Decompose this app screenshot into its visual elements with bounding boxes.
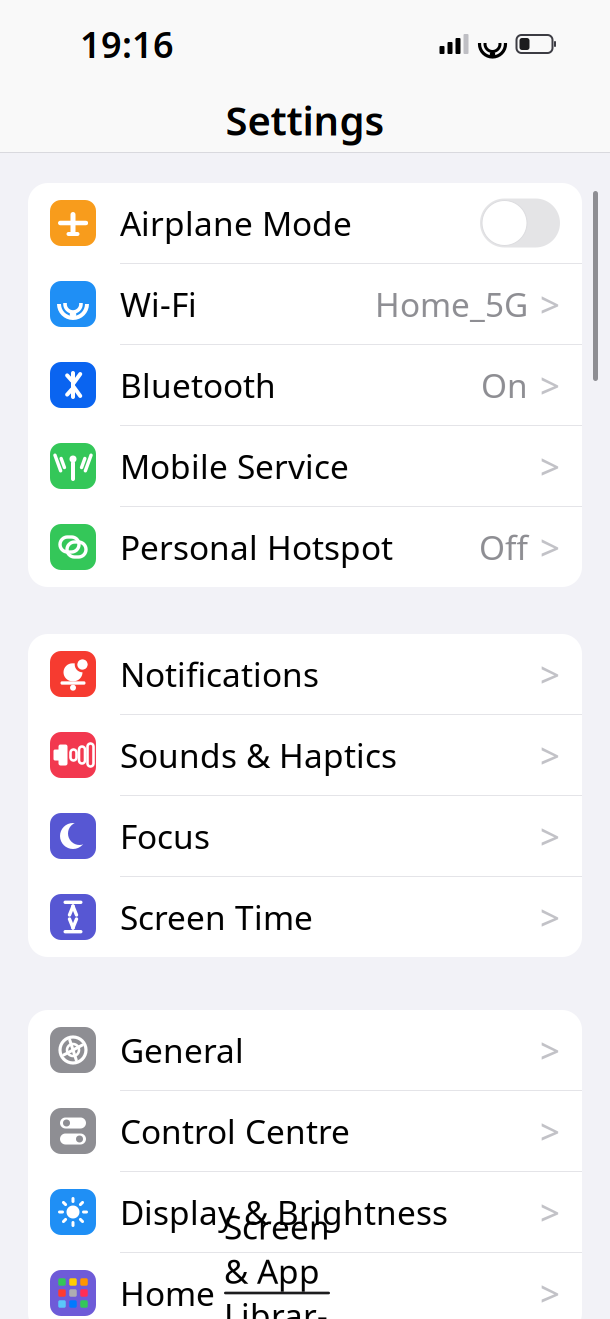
staticText: > <box>540 732 560 778</box>
staticText: > <box>540 894 560 940</box>
button[interactable]: Screen Time <box>28 877 582 957</box>
staticText: > <box>540 281 560 327</box>
staticText: Screen Time <box>120 895 313 939</box>
staticText: > <box>540 1027 560 1073</box>
button[interactable]: Focus <box>28 796 582 877</box>
staticText: Home <box>120 1271 224 1315</box>
staticText: > <box>540 813 560 859</box>
button[interactable]: Display & Brightness <box>28 1172 582 1253</box>
staticText: Control Centre <box>120 1109 350 1153</box>
staticText: > <box>540 651 560 697</box>
staticText: > <box>540 1108 560 1154</box>
button[interactable]: Notifications <box>28 634 582 715</box>
button[interactable]: Mobile Service <box>28 426 582 507</box>
staticText: On <box>481 363 528 407</box>
staticText: Sounds & Haptics <box>120 733 397 777</box>
staticText: Home_5G <box>375 282 528 326</box>
staticText: Wi-Fi <box>120 282 197 326</box>
button[interactable]: Airplane Mode <box>28 183 582 264</box>
button[interactable]: Personal Hotspot <box>28 507 582 587</box>
staticText: Screen & App Library <box>224 1204 330 1319</box>
staticText: Notifications <box>120 652 319 696</box>
staticText: > <box>540 443 560 489</box>
button[interactable]: Wi-Fi <box>28 264 582 345</box>
button[interactable]: General <box>28 1010 582 1091</box>
staticText: > <box>540 524 560 570</box>
button[interactable]: Home <box>28 1253 582 1319</box>
staticText: Bluetooth <box>120 363 276 407</box>
staticText: Display & Brightness <box>120 1190 448 1234</box>
button[interactable]: Sounds & Haptics <box>28 715 582 796</box>
staticText: Personal Hotspot <box>120 525 393 569</box>
button[interactable]: Settings <box>0 88 610 152</box>
button[interactable]: Bluetooth <box>28 345 582 426</box>
staticText: Focus <box>120 814 210 858</box>
staticText: Airplane Mode <box>120 201 352 245</box>
staticText: > <box>540 362 560 408</box>
staticText: > <box>540 1189 560 1235</box>
staticText: 19:16 <box>80 20 174 68</box>
staticText: Settings <box>225 93 384 146</box>
staticText: Mobile Service <box>120 444 349 488</box>
button[interactable]: Control Centre <box>28 1091 582 1172</box>
staticText: Off <box>479 525 528 569</box>
staticText: > <box>540 1270 560 1316</box>
staticText: General <box>120 1028 244 1072</box>
